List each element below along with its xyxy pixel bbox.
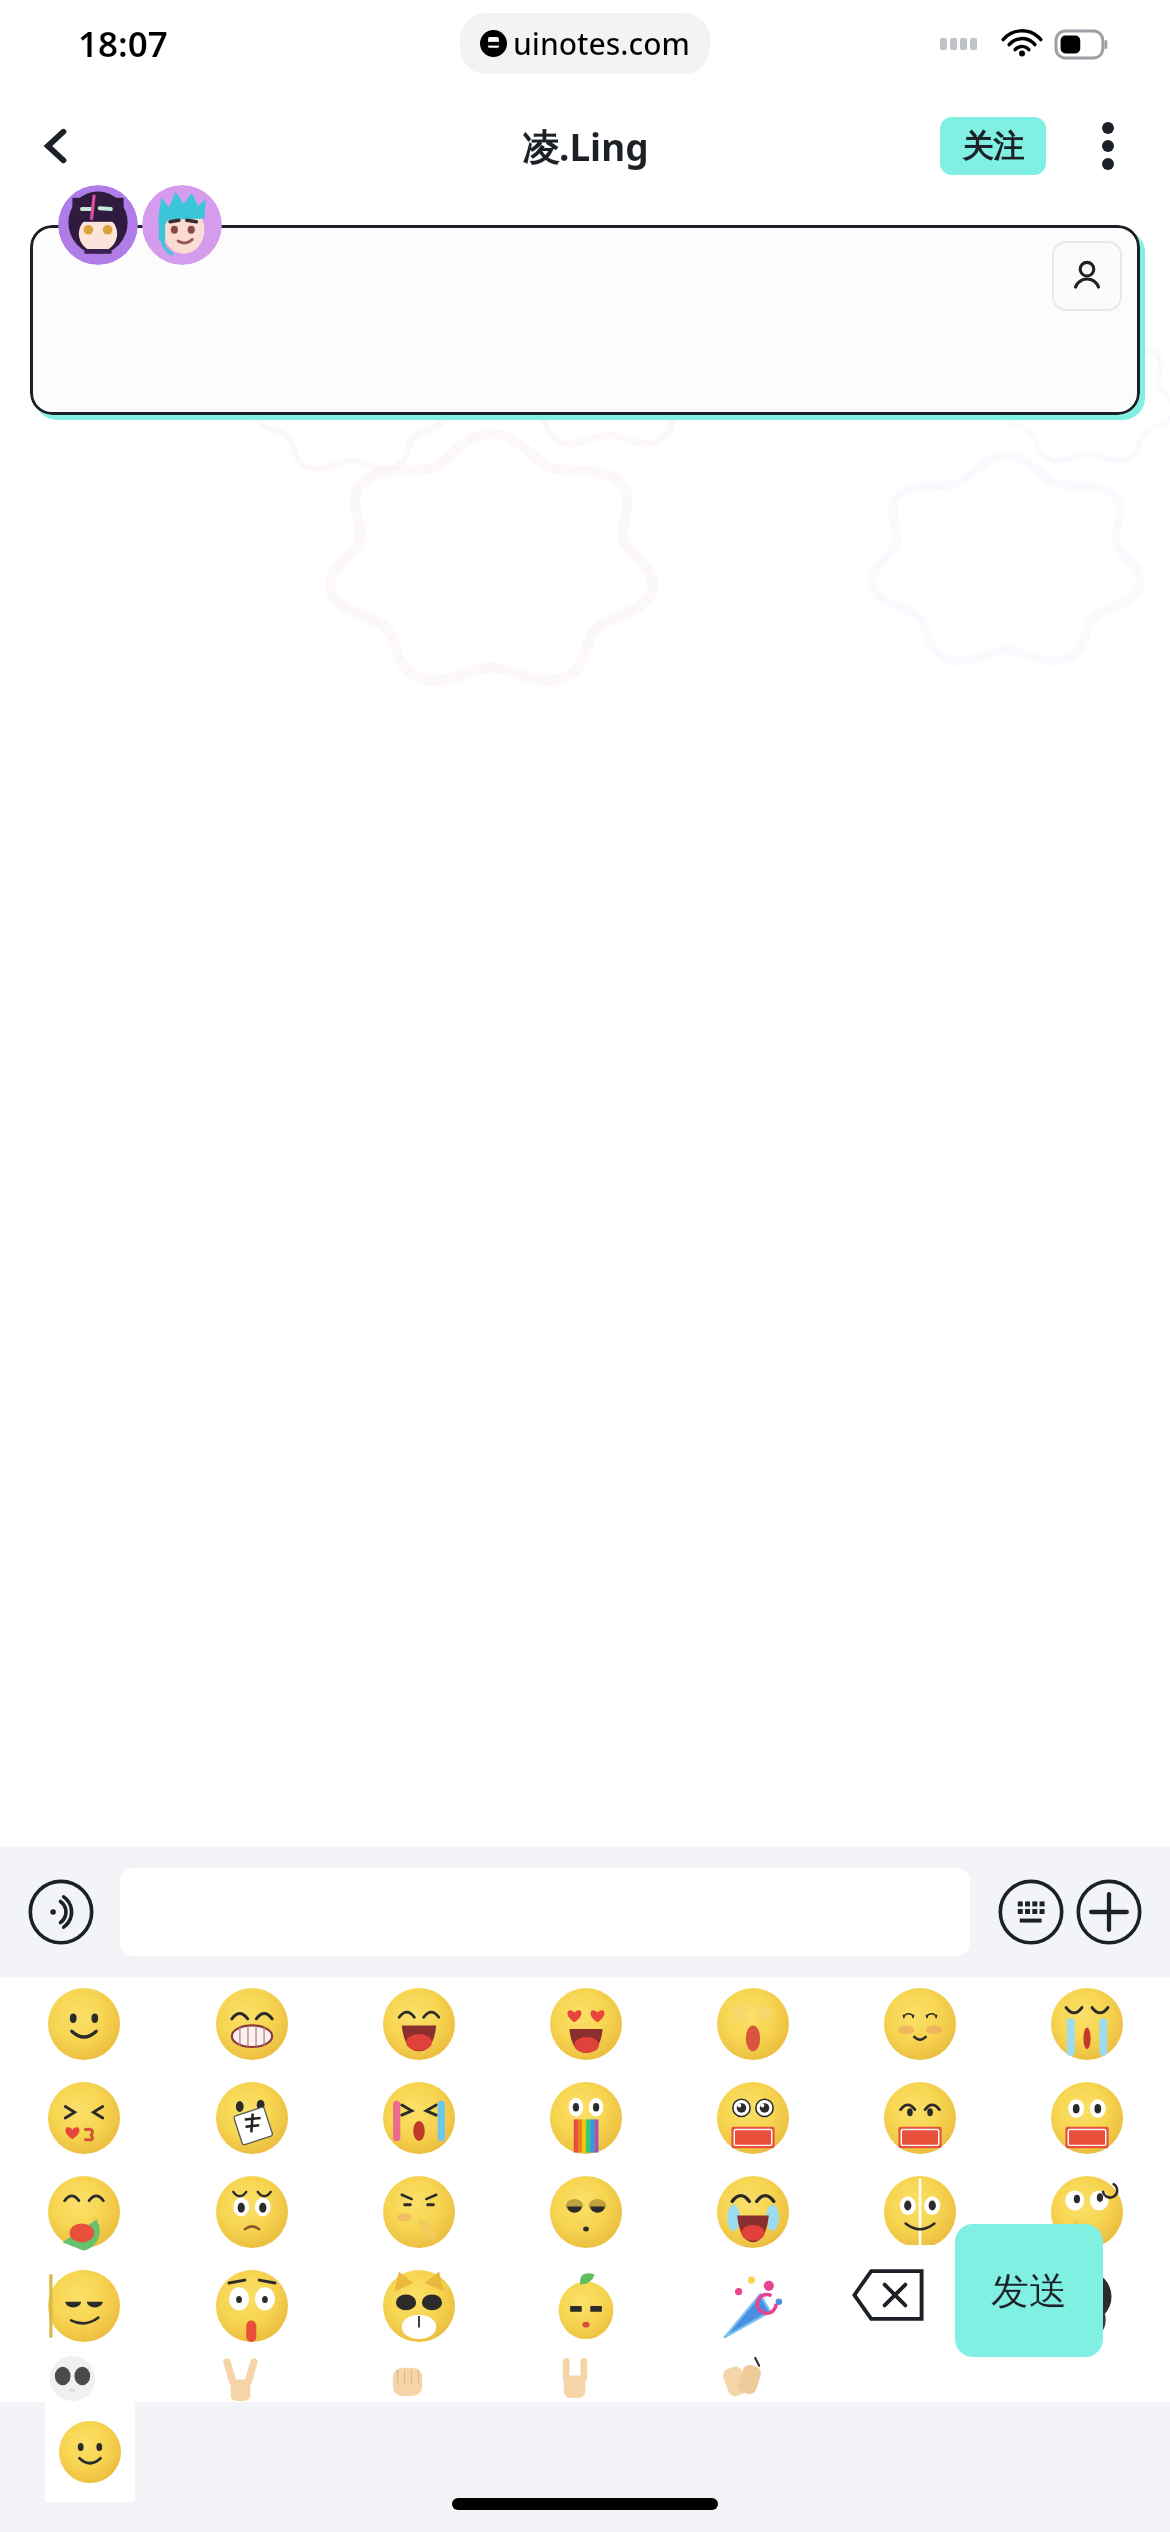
button[interactable] [669, 2165, 836, 2259]
button[interactable] [1003, 1977, 1170, 2071]
button[interactable] [168, 2165, 335, 2259]
staticText: 18:07 [78, 20, 168, 68]
button[interactable] [836, 1977, 1003, 2071]
button[interactable]: Keyboard [996, 1877, 1066, 1947]
button[interactable] [168, 1977, 335, 2071]
button[interactable] [0, 1977, 168, 2071]
button[interactable] [669, 1977, 836, 2071]
button[interactable] [335, 2071, 502, 2165]
button[interactable] [836, 2071, 1003, 2165]
button[interactable] [335, 2353, 502, 2402]
button[interactable] [836, 2353, 1003, 2402]
button[interactable] [335, 1977, 502, 2071]
button[interactable]: Avatar [142, 185, 222, 265]
button[interactable] [1003, 2353, 1170, 2402]
button[interactable] [168, 2259, 335, 2353]
button[interactable]: 关注 [940, 117, 1046, 175]
button[interactable] [502, 2259, 669, 2353]
button[interactable] [335, 2165, 502, 2259]
staticText: uinotes.com [513, 23, 690, 64]
staticText: 发送 [991, 2267, 1067, 2315]
button[interactable] [1003, 2165, 1170, 2259]
button[interactable]: Delete [815, 2245, 960, 2345]
button[interactable] [669, 2071, 836, 2165]
button[interactable] [0, 2071, 168, 2165]
button[interactable]: 发送 [955, 2224, 1103, 2357]
button[interactable] [836, 2165, 1003, 2259]
button[interactable] [168, 2353, 335, 2402]
button[interactable]: Back [20, 110, 92, 182]
button[interactable] [0, 2165, 168, 2259]
button[interactable] [502, 2353, 669, 2402]
button[interactable]: Emoji tab [45, 2402, 135, 2502]
button[interactable] [0, 2353, 168, 2402]
button[interactable]: Profile [30, 225, 1140, 415]
button[interactable] [836, 2259, 1003, 2353]
button[interactable] [168, 2071, 335, 2165]
button[interactable] [502, 2071, 669, 2165]
button[interactable] [1003, 2259, 1170, 2353]
button[interactable]: More [1074, 1877, 1144, 1947]
button[interactable]: Voice message [26, 1877, 96, 1947]
button[interactable] [1003, 2071, 1170, 2165]
button[interactable] [669, 2259, 836, 2353]
button[interactable]: More options [1072, 110, 1144, 182]
staticText: 凌.Ling [522, 121, 649, 172]
button[interactable] [335, 2259, 502, 2353]
button[interactable]: Profile [1052, 241, 1122, 311]
button[interactable] [502, 2165, 669, 2259]
button[interactable] [0, 2259, 168, 2353]
staticText: 关注 [962, 127, 1024, 166]
button[interactable]: Avatar [58, 185, 138, 265]
button[interactable] [502, 1977, 669, 2071]
button[interactable] [669, 2353, 836, 2402]
